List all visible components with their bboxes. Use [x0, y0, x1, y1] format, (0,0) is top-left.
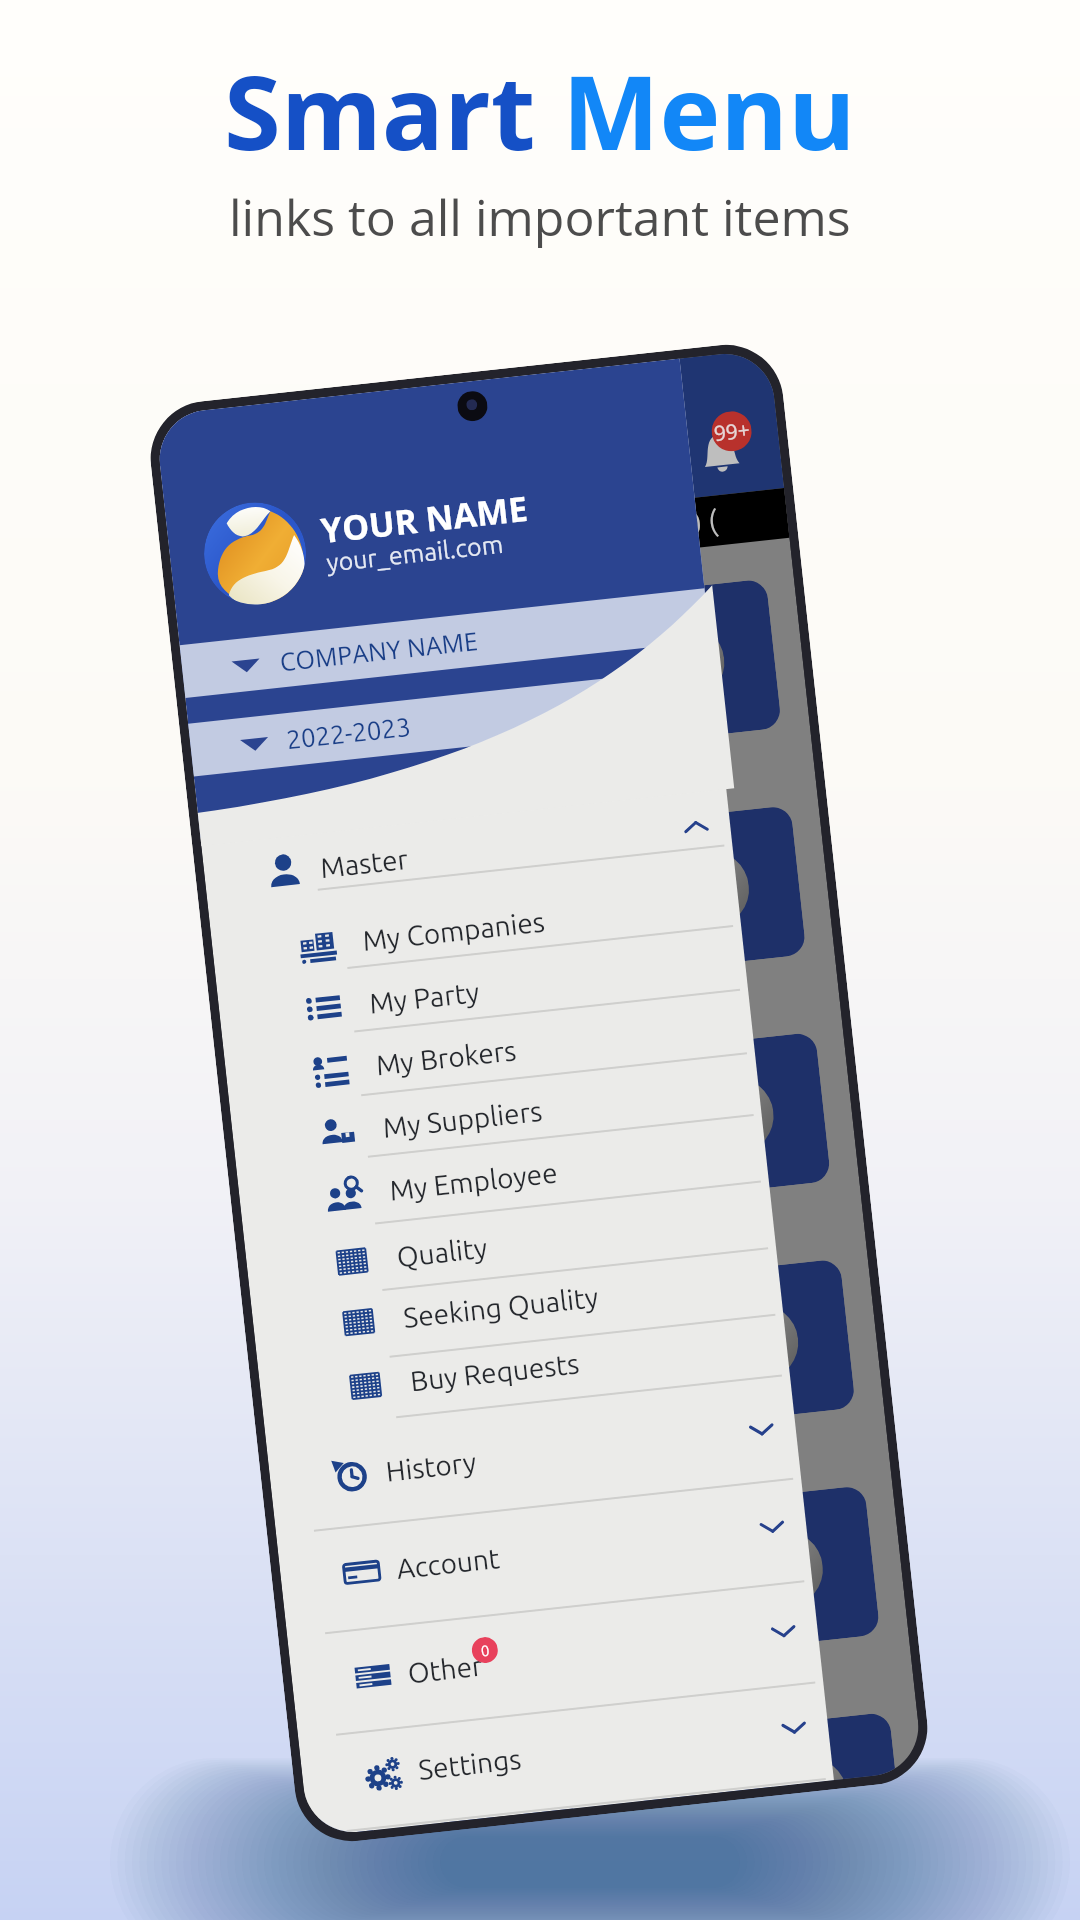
staticText: Account	[395, 1542, 502, 1584]
staticText: COMPANY NAME	[278, 623, 479, 678]
button[interactable]: Settings	[299, 1685, 832, 1821]
button[interactable]: Other	[288, 1588, 822, 1725]
staticText: your_email.com	[325, 530, 505, 577]
staticText: Smart Menu	[224, 40, 856, 180]
staticText: 2022-2023	[285, 712, 412, 754]
staticText: Quality	[395, 1232, 489, 1272]
staticText: 99+	[712, 415, 752, 448]
staticText: My Party	[368, 976, 481, 1019]
staticText: Settings	[417, 1743, 523, 1785]
staticText: Report:. 0 (	[568, 503, 720, 553]
button[interactable]: Account	[277, 1484, 810, 1620]
staticText: YOUR NAME	[318, 485, 530, 553]
button[interactable]: Buy Requests	[257, 1300, 790, 1437]
staticText: My Employee	[388, 1156, 559, 1206]
button[interactable]: Expand	[762, 1610, 806, 1654]
staticText: links to all important items	[229, 183, 851, 251]
button[interactable]: Quality	[243, 1176, 777, 1312]
button[interactable]: Expand	[772, 1706, 816, 1750]
button[interactable]: Master	[201, 783, 734, 920]
staticText: Other	[406, 1649, 484, 1688]
button[interactable]: My Brokers	[222, 984, 756, 1120]
button[interactable]: Seeking Quality	[250, 1236, 784, 1373]
staticText: My Suppliers	[381, 1095, 544, 1143]
button[interactable]: Notifications	[689, 422, 753, 485]
button[interactable]: COMPANY NAME	[179, 588, 710, 698]
staticText: My Companies	[361, 905, 547, 956]
staticText: History	[384, 1446, 478, 1487]
staticText: Master	[319, 843, 409, 883]
staticText: Seeking Quality	[402, 1281, 600, 1333]
staticText: My Brokers	[374, 1034, 518, 1080]
button[interactable]: 2022-2023	[188, 667, 719, 776]
button[interactable]: My Companies	[209, 860, 743, 996]
button[interactable]: My Party	[216, 922, 749, 1059]
button[interactable]: My Suppliers	[229, 1046, 763, 1183]
button[interactable]: History	[266, 1386, 800, 1523]
staticText: 0	[480, 1642, 491, 1659]
staticText: Buy Requests	[409, 1347, 581, 1396]
button[interactable]: Collapse	[674, 804, 718, 848]
button[interactable]: Expand	[740, 1408, 784, 1452]
button[interactable]: Expand	[750, 1505, 794, 1549]
button[interactable]: My Employee	[236, 1109, 770, 1246]
